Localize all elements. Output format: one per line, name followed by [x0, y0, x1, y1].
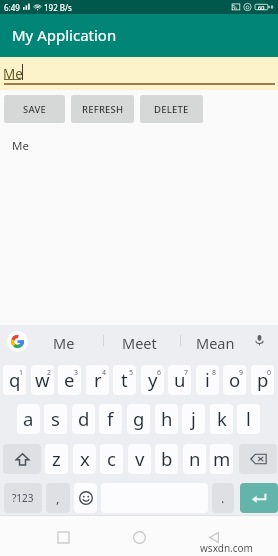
button[interactable]: r	[86, 365, 109, 395]
staticText: wsxdn.com	[200, 541, 253, 555]
staticText: v	[135, 446, 145, 471]
button[interactable]: SAVE	[4, 95, 65, 123]
staticText: 9	[239, 368, 244, 378]
button[interactable]: a	[17, 404, 40, 434]
button[interactable]: n	[183, 444, 206, 474]
staticText: z	[52, 446, 61, 471]
staticText: s	[51, 406, 60, 431]
staticText: 2	[47, 368, 52, 378]
button[interactable]: m	[210, 444, 233, 474]
staticText: 192 B/s	[44, 2, 72, 13]
staticText: q	[9, 367, 21, 392]
button[interactable]: Shift	[3, 444, 41, 474]
staticText: e	[64, 367, 75, 392]
staticText: 7	[184, 368, 189, 378]
button[interactable]: y	[141, 365, 164, 395]
button[interactable]: j	[182, 404, 205, 434]
button[interactable]: Home	[124, 522, 154, 552]
staticText: d	[78, 406, 90, 431]
button[interactable]: ?123	[4, 483, 42, 513]
button[interactable]: u	[168, 365, 191, 395]
button[interactable]: Recents	[48, 522, 78, 552]
staticText: f	[107, 406, 114, 431]
staticText: 4	[102, 368, 107, 378]
button[interactable]: l	[237, 404, 260, 434]
staticText: Mean	[196, 333, 235, 353]
staticText: ,	[56, 489, 60, 507]
staticText: .	[221, 489, 225, 507]
staticText: h	[161, 406, 173, 431]
other: Shift	[15, 452, 30, 467]
staticText: Me	[3, 65, 23, 83]
button[interactable]: k	[210, 404, 233, 434]
staticText: l	[246, 406, 251, 431]
staticText: 1	[19, 368, 24, 378]
button[interactable]: ,	[46, 483, 70, 513]
staticText: a	[23, 406, 34, 431]
button[interactable]: w	[31, 365, 54, 395]
button[interactable]: Back	[199, 522, 229, 552]
staticText: ?123	[12, 491, 34, 505]
button[interactable]: p	[251, 365, 274, 395]
other: Backspace	[250, 453, 267, 465]
staticText: j	[191, 406, 196, 431]
staticText: t	[121, 367, 128, 392]
staticText: w	[35, 367, 50, 392]
staticText: p	[257, 367, 269, 392]
staticText: Meet	[122, 333, 157, 353]
button[interactable]: e	[58, 365, 81, 395]
button[interactable]: DELETE	[140, 95, 203, 123]
staticText: i	[205, 367, 210, 392]
button[interactable]: Voice input	[251, 332, 267, 348]
staticText: 6:49	[4, 2, 20, 13]
staticText: m	[213, 446, 231, 471]
staticText: b	[161, 446, 173, 471]
staticText: u	[174, 367, 186, 392]
button[interactable]: Mean	[179, 327, 251, 358]
button[interactable]: Me	[0, 57, 278, 90]
staticText: c	[107, 446, 116, 471]
button[interactable]: h	[155, 404, 178, 434]
button[interactable]: Google	[7, 331, 28, 352]
staticText: 6	[157, 368, 162, 378]
staticText: x	[80, 446, 90, 471]
staticText: 0	[267, 368, 272, 378]
button[interactable]: z	[45, 444, 68, 474]
button[interactable]: c	[100, 444, 123, 474]
staticText: 3	[74, 368, 79, 378]
button[interactable]: Backspace	[239, 444, 277, 474]
button[interactable]: f	[99, 404, 122, 434]
staticText: My Application	[12, 25, 117, 45]
button[interactable]: g	[127, 404, 150, 434]
button[interactable]: Me	[28, 327, 100, 358]
staticText: o	[229, 367, 241, 392]
button[interactable]: v	[128, 444, 151, 474]
button[interactable]: .	[212, 483, 234, 513]
staticText: DELETE	[154, 103, 189, 116]
button[interactable]: s	[44, 404, 67, 434]
staticText: Me	[12, 138, 29, 154]
button[interactable]: q	[3, 365, 26, 395]
button[interactable]: o	[223, 365, 246, 395]
button[interactable]: Meet	[102, 327, 177, 358]
button[interactable]: Enter	[240, 483, 278, 513]
staticText: Me	[53, 333, 75, 353]
staticText: 8	[212, 368, 217, 378]
button[interactable]: Emoji	[74, 483, 97, 513]
button[interactable]: REFRESH	[71, 95, 134, 123]
staticText: n	[189, 446, 201, 471]
staticText: k	[217, 406, 227, 431]
button[interactable]: b	[155, 444, 178, 474]
staticText: 60	[258, 4, 265, 11]
button[interactable]: d	[72, 404, 95, 434]
button[interactable]: t	[113, 365, 136, 395]
staticText: y	[148, 367, 158, 392]
staticText: REFRESH	[82, 103, 124, 116]
button[interactable]: i	[196, 365, 219, 395]
staticText: g	[133, 406, 145, 431]
staticText: r	[94, 367, 102, 392]
staticText: 5	[129, 368, 134, 378]
staticText: SAVE	[23, 103, 47, 116]
button[interactable]: x	[73, 444, 96, 474]
